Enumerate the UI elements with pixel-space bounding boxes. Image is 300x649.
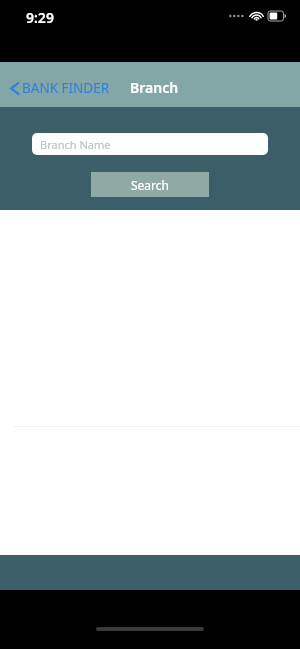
- button[interactable]: BANK FINDER: [6, 75, 114, 101]
- staticText: Search: [131, 177, 169, 193]
- button[interactable]: Branch Name: [32, 133, 268, 155]
- button[interactable]: Search: [91, 172, 209, 197]
- staticText: Branch: [130, 78, 179, 97]
- staticText: Branch Name: [40, 137, 111, 152]
- staticText: BANK FINDER: [22, 79, 110, 97]
- staticText: 9:29: [26, 8, 54, 27]
